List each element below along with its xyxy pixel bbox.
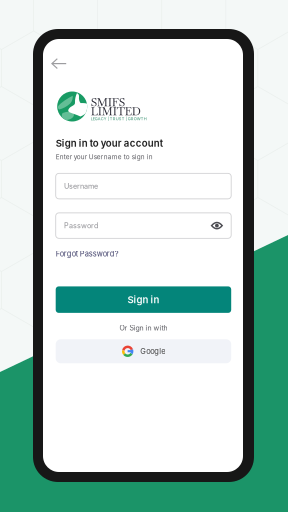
button[interactable]: Sign in (56, 286, 231, 313)
button[interactable]: Google (56, 339, 231, 363)
staticText: Sign in (127, 294, 159, 305)
staticText: Sign in to your account (56, 137, 163, 149)
staticText: Enter your Username to sign in (56, 153, 153, 161)
button[interactable]: Forgot Password? (56, 249, 119, 258)
button[interactable]: Back (51, 54, 75, 72)
staticText: Password (64, 221, 98, 230)
staticText: Or Sign in with (119, 324, 167, 332)
staticText: Forgot Password? (56, 249, 119, 258)
staticText: Google (140, 347, 165, 356)
staticText: LEGACY | TRUST | GROWTH (91, 116, 147, 121)
staticText: Username (64, 182, 98, 190)
staticText: LIMITED (91, 104, 141, 119)
staticText: SMIFS (91, 95, 125, 110)
